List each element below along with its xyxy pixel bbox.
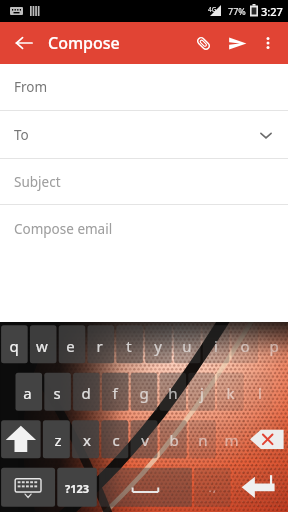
staticText: s: [53, 383, 61, 403]
staticText: ?123: [65, 481, 90, 496]
button[interactable]: Hide keyboard: [0, 464, 56, 512]
button[interactable]: r: [85, 322, 114, 369]
button[interactable]: f: [100, 369, 129, 416]
staticText: q: [9, 336, 19, 356]
button[interactable]: Space: [98, 464, 193, 512]
staticText: a: [23, 383, 32, 403]
button[interactable]: b: [159, 416, 188, 464]
staticText: r: [96, 336, 103, 356]
staticText: c: [112, 430, 120, 450]
staticText: t: [126, 336, 132, 356]
button[interactable]: i: [201, 322, 230, 369]
button[interactable]: q: [0, 322, 28, 369]
staticText: i: [214, 336, 218, 356]
staticText: k: [226, 383, 235, 403]
button[interactable]: e: [56, 322, 85, 369]
button[interactable]: x: [72, 416, 101, 464]
button[interactable]: t: [114, 322, 143, 369]
staticText: u: [182, 336, 192, 356]
staticText: b: [169, 430, 179, 450]
staticText: z: [54, 430, 62, 450]
button[interactable]: Attach file: [186, 26, 220, 60]
button[interactable]: k: [216, 369, 245, 416]
staticText: y: [154, 336, 162, 356]
button[interactable]: . ,: [193, 464, 232, 512]
staticText: From: [14, 78, 48, 96]
staticText: f: [112, 383, 118, 403]
staticText: p: [269, 336, 279, 356]
staticText: Subject: [14, 173, 61, 191]
button[interactable]: a: [13, 369, 42, 416]
button[interactable]: y: [143, 322, 172, 369]
button[interactable]: Shift: [0, 416, 43, 464]
button[interactable]: p: [259, 322, 288, 369]
staticText: e: [66, 336, 75, 356]
button[interactable]: n: [188, 416, 217, 464]
button[interactable]: o: [230, 322, 259, 369]
staticText: j: [200, 383, 204, 403]
button[interactable]: d: [71, 369, 100, 416]
staticText: g: [139, 383, 149, 403]
button[interactable]: From: [0, 64, 288, 110]
staticText: . ,: [209, 483, 216, 494]
button[interactable]: Compose email: [0, 205, 288, 253]
button[interactable]: m: [217, 416, 246, 464]
staticText: o: [240, 336, 250, 356]
staticText: Compose: [48, 32, 120, 54]
button[interactable]: Backspace: [246, 416, 288, 464]
staticText: v: [141, 430, 149, 450]
button[interactable]: l: [245, 369, 274, 416]
staticText: 3:27: [261, 4, 283, 19]
staticText: d: [81, 383, 91, 403]
button[interactable]: Subject: [0, 159, 288, 204]
staticText: To: [14, 126, 29, 144]
button[interactable]: More options: [254, 29, 282, 57]
button[interactable]: ?123: [56, 464, 98, 512]
button[interactable]: v: [130, 416, 159, 464]
button[interactable]: c: [101, 416, 130, 464]
staticText: l: [258, 383, 262, 403]
button[interactable]: Send: [220, 26, 254, 60]
staticText: h: [168, 383, 178, 403]
button[interactable]: w: [28, 322, 56, 369]
button[interactable]: To: [0, 111, 288, 158]
staticText: w: [36, 336, 48, 356]
staticText: n: [198, 430, 208, 450]
button[interactable]: g: [129, 369, 158, 416]
button[interactable]: Enter: [232, 464, 288, 512]
button[interactable]: Back: [6, 25, 42, 61]
button[interactable]: u: [172, 322, 201, 369]
staticText: 4G: [208, 5, 217, 14]
staticText: m: [224, 430, 239, 450]
staticText: 77%: [228, 5, 246, 17]
button[interactable]: z: [43, 416, 72, 464]
button[interactable]: j: [187, 369, 216, 416]
staticText: x: [83, 430, 91, 450]
staticText: Compose email: [14, 220, 113, 238]
button[interactable]: s: [42, 369, 71, 416]
button[interactable]: h: [158, 369, 187, 416]
